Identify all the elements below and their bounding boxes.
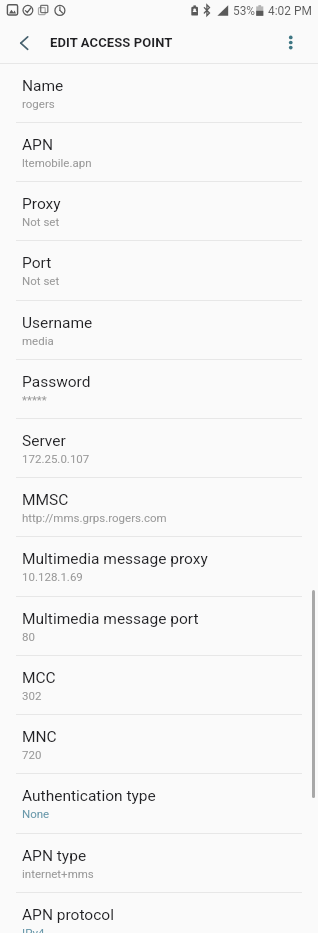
button[interactable]: Username bbox=[0, 301, 318, 360]
staticText: internet+mms bbox=[22, 867, 94, 880]
staticText: 172.25.0.107 bbox=[22, 452, 90, 465]
button[interactable]: More options bbox=[278, 31, 302, 55]
button[interactable]: Password bbox=[0, 360, 318, 419]
staticText: Authentication type bbox=[22, 787, 156, 805]
staticText: Proxy bbox=[22, 195, 61, 213]
staticText: Name bbox=[22, 77, 64, 95]
staticText: MNC bbox=[22, 728, 57, 746]
staticText: Multimedia message port bbox=[22, 610, 199, 628]
button[interactable]: Server bbox=[0, 419, 318, 478]
staticText: APN bbox=[22, 136, 53, 154]
staticText: 302 bbox=[22, 689, 42, 702]
staticText: APN type bbox=[22, 847, 87, 865]
button[interactable]: Multimedia message proxy bbox=[0, 537, 318, 596]
staticText: Username bbox=[22, 314, 93, 332]
staticText: media bbox=[22, 334, 54, 347]
staticText: MCC bbox=[22, 669, 56, 687]
button[interactable]: MNC bbox=[0, 715, 318, 774]
button[interactable]: Navigate up bbox=[12, 31, 36, 55]
button[interactable]: APN type bbox=[0, 834, 318, 893]
staticText: Password bbox=[22, 373, 91, 391]
button[interactable]: MMSC bbox=[0, 478, 318, 537]
staticText: 53% bbox=[233, 4, 256, 18]
button[interactable]: Port bbox=[0, 241, 318, 300]
staticText: rogers bbox=[22, 97, 55, 110]
staticText: ***** bbox=[22, 393, 47, 406]
staticText: APN protocol bbox=[22, 906, 114, 924]
staticText: Server bbox=[22, 432, 66, 450]
staticText: http://mms.grps.rogers.com bbox=[22, 511, 167, 524]
staticText: Not set bbox=[22, 215, 60, 228]
button[interactable]: APN protocol bbox=[0, 893, 318, 933]
button[interactable]: Authentication type bbox=[0, 774, 318, 833]
staticText: Multimedia message proxy bbox=[22, 550, 208, 568]
staticText: 10.128.1.69 bbox=[22, 570, 83, 583]
staticText: None bbox=[22, 807, 50, 820]
button[interactable]: Multimedia message port bbox=[0, 597, 318, 656]
button[interactable]: Proxy bbox=[0, 182, 318, 241]
staticText: MMSC bbox=[22, 491, 69, 509]
staticText: Port bbox=[22, 254, 52, 272]
staticText: EDIT ACCESS POINT bbox=[50, 35, 173, 50]
button[interactable]: Name bbox=[0, 64, 318, 123]
staticText: 4:02 PM bbox=[268, 4, 312, 18]
staticText: 80 bbox=[22, 630, 35, 643]
staticText: 720 bbox=[22, 748, 42, 761]
button[interactable]: APN bbox=[0, 123, 318, 182]
staticText: IPv4 bbox=[22, 926, 45, 933]
button[interactable]: MCC bbox=[0, 656, 318, 715]
staticText: Not set bbox=[22, 274, 60, 287]
staticText: ltemobile.apn bbox=[22, 156, 92, 169]
